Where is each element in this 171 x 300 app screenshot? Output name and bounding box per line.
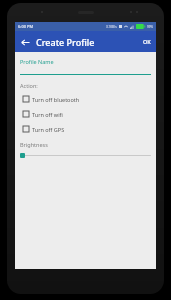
button[interactable]: Turn off wifi xyxy=(20,108,151,120)
staticText: Action: xyxy=(20,82,38,89)
staticText: 99% xyxy=(147,25,153,29)
staticText: Brightness xyxy=(20,141,48,148)
staticText: Create Profile xyxy=(36,36,95,48)
button[interactable]: Profile Name xyxy=(20,58,151,75)
button[interactable]: Turn off GPS xyxy=(20,123,151,135)
staticText: OK xyxy=(143,38,151,45)
staticText: 3.1KB/s xyxy=(106,25,117,29)
button[interactable]: Brightness slider xyxy=(20,151,151,159)
button[interactable]: OK xyxy=(140,35,154,48)
staticText: Turn off bluetooth xyxy=(32,96,80,103)
staticText: Profile Name xyxy=(20,58,54,65)
staticText: Turn off wifi xyxy=(32,111,63,118)
button[interactable]: Back xyxy=(18,35,32,49)
button[interactable]: Turn off bluetooth xyxy=(20,93,151,105)
staticText: Turn off GPS xyxy=(32,126,65,133)
staticText: 6:00 PM xyxy=(18,24,34,29)
